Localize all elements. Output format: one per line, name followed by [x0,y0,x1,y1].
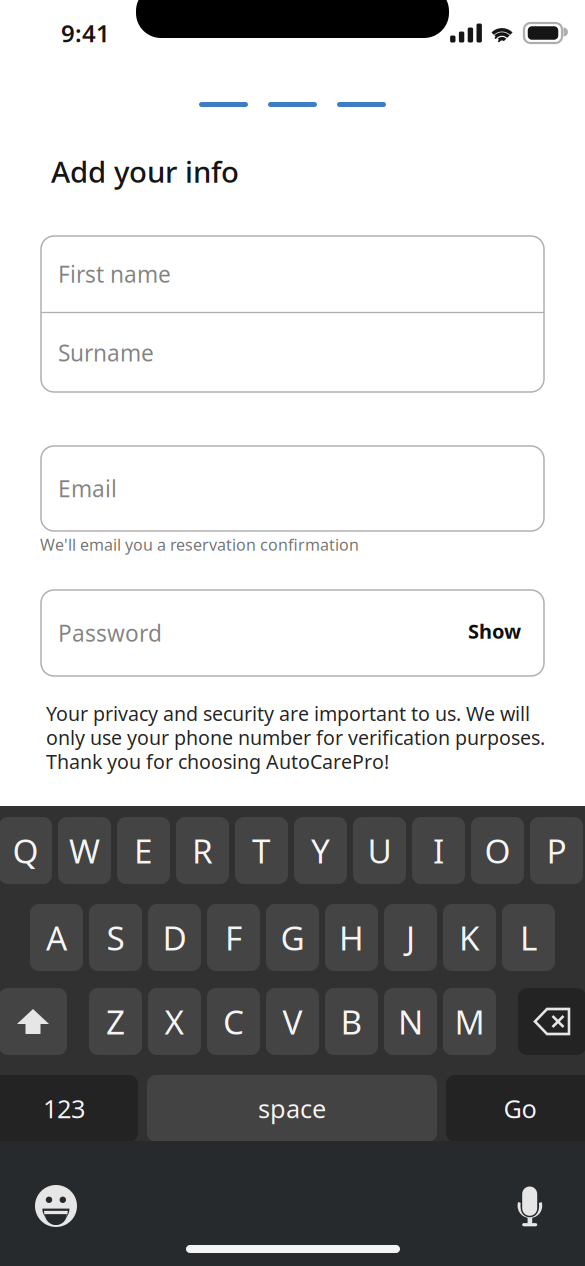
button[interactable]: Delete [518,988,585,1055]
button[interactable]: W [58,817,111,884]
button[interactable]: P [530,817,583,884]
staticText: Surname [58,338,154,368]
staticText: Password [58,618,162,648]
staticText: B [340,999,362,1044]
staticText: I [433,828,444,873]
button[interactable]: X [148,988,201,1055]
staticText: F [225,915,242,960]
button[interactable]: Y [294,817,347,884]
button[interactable]: A [30,904,83,971]
button[interactable]: L [502,904,555,971]
staticText: 123 [43,1092,85,1125]
button[interactable]: E [117,817,170,884]
staticText: 9:41 [61,17,110,49]
button[interactable]: Password [41,590,544,676]
staticText: R [192,828,213,873]
staticText: K [459,915,480,960]
staticText: O [484,828,510,873]
button[interactable]: Email [41,446,544,531]
button[interactable]: Surname [41,313,544,392]
staticText: M [454,999,484,1044]
button[interactable]: 123 [0,1075,138,1142]
button[interactable]: H [325,904,378,971]
staticText: D [162,915,186,960]
button[interactable]: V [266,988,319,1055]
staticText: Your privacy and security are important … [46,700,530,727]
button[interactable]: S [89,904,142,971]
staticText: W [69,828,100,873]
staticText: T [252,828,271,873]
button[interactable]: R [176,817,229,884]
staticText: Go [503,1092,536,1125]
button[interactable]: Z [89,988,142,1055]
staticText: G [280,915,304,960]
staticText: J [406,915,415,960]
staticText: Add your info [51,152,239,191]
staticText: H [339,915,364,960]
button[interactable]: C [207,988,260,1055]
staticText: We'll email you a reservation confirmati… [40,534,359,555]
staticText: Show [468,618,521,644]
staticText: Thank you for choosing AutoCarePro! [46,748,389,775]
staticText: space [258,1092,326,1125]
button[interactable]: Go [446,1075,585,1142]
staticText: A [46,915,67,960]
staticText: P [546,828,566,873]
button[interactable]: O [471,817,524,884]
button[interactable]: Dictate [493,1174,567,1240]
button[interactable]: G [266,904,319,971]
button[interactable]: space [147,1075,437,1142]
button[interactable]: N [384,988,437,1055]
button[interactable]: First name [41,236,544,312]
button[interactable]: M [443,988,496,1055]
button[interactable]: J [384,904,437,971]
button[interactable]: T [235,817,288,884]
staticText: U [367,828,391,873]
button[interactable]: D [148,904,201,971]
staticText: First name [58,259,171,289]
button[interactable]: U [353,817,406,884]
staticText: Q [12,828,38,873]
staticText: S [106,915,124,960]
staticText: Y [311,828,330,873]
staticText: only use your phone number for verificat… [46,724,545,751]
staticText: E [134,828,153,873]
staticText: N [398,999,423,1044]
button[interactable]: Emoji [19,1173,93,1239]
staticText: V [282,999,302,1044]
button[interactable]: K [443,904,496,971]
button[interactable]: F [207,904,260,971]
button[interactable]: B [325,988,378,1055]
button[interactable]: I [412,817,465,884]
staticText: C [223,999,244,1044]
button[interactable]: Shift [0,988,67,1055]
staticText: Z [106,999,125,1044]
staticText: L [520,915,537,960]
staticText: X [164,999,184,1044]
button[interactable]: Q [0,817,52,884]
staticText: Email [58,473,117,503]
